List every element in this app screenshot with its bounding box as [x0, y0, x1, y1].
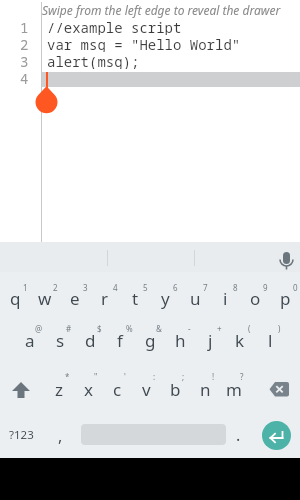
staticText: w: [38, 287, 52, 310]
button[interactable]: v: [132, 377, 160, 401]
button[interactable]: i: [211, 286, 239, 310]
staticText: a: [25, 329, 35, 352]
button[interactable]: p: [271, 286, 299, 310]
button[interactable]: y: [151, 286, 179, 310]
button[interactable]: a: [16, 328, 44, 352]
staticText: 2: [20, 35, 29, 52]
staticText: m: [226, 378, 242, 401]
staticText: c: [113, 378, 122, 401]
staticText: //example script: [47, 18, 182, 35]
staticText: p: [280, 287, 291, 310]
button[interactable]: c: [103, 377, 131, 401]
button[interactable]: h: [166, 328, 194, 352]
staticText: v: [142, 378, 151, 401]
staticText: r: [101, 287, 109, 310]
staticText: j: [208, 329, 213, 352]
staticText: ,: [58, 425, 63, 447]
staticText: 1: [20, 18, 29, 35]
staticText: alert(msg);: [47, 52, 140, 69]
staticText: g: [145, 329, 156, 352]
staticText: !: [212, 371, 215, 382]
staticText: (: [248, 323, 251, 334]
staticText: Swipe from the left edge to reveal the d…: [42, 2, 281, 18]
button[interactable]: t: [121, 286, 149, 310]
button[interactable]: w: [31, 286, 59, 310]
staticText: ?123: [9, 427, 34, 443]
staticText: 3: [20, 52, 29, 69]
staticText: @: [35, 323, 43, 334]
staticText: ;: [182, 371, 185, 382]
staticText: ): [278, 323, 281, 334]
button[interactable]: j: [196, 328, 224, 352]
button[interactable]: b: [161, 377, 189, 401]
staticText: u: [190, 287, 201, 310]
staticText: $: [97, 323, 102, 334]
staticText: var msg = "Hello World": [47, 35, 241, 52]
staticText: ': [124, 371, 126, 382]
staticText: 4: [20, 69, 29, 86]
staticText: %: [126, 323, 133, 334]
button[interactable]: [6, 375, 36, 405]
staticText: n: [200, 378, 211, 401]
staticText: +: [217, 323, 222, 334]
staticText: :: [153, 371, 156, 382]
button[interactable]: r: [91, 286, 119, 310]
staticText: -: [188, 323, 191, 334]
staticText: 3: [83, 282, 88, 293]
button[interactable]: [274, 246, 299, 271]
staticText: 7: [203, 282, 208, 293]
staticText: 9: [263, 282, 268, 293]
button[interactable]: x: [74, 377, 102, 401]
staticText: y: [161, 287, 170, 310]
button[interactable]: [262, 421, 291, 450]
button[interactable]: s: [46, 328, 74, 352]
staticText: ?: [240, 371, 244, 382]
staticText: d: [85, 329, 96, 352]
staticText: 5: [143, 282, 148, 293]
staticText: z: [55, 378, 63, 401]
staticText: 4: [113, 282, 118, 293]
button[interactable]: g: [136, 328, 164, 352]
staticText: *: [65, 371, 70, 382]
button[interactable]: f: [106, 328, 134, 352]
staticText: s: [56, 329, 65, 352]
staticText: b: [170, 378, 181, 401]
button[interactable]: ?123: [4, 424, 38, 446]
button[interactable]: o: [241, 286, 269, 310]
button[interactable]: u: [181, 286, 209, 310]
staticText: q: [10, 287, 21, 310]
staticText: .: [236, 424, 241, 446]
staticText: &: [156, 323, 162, 334]
button[interactable]: n: [191, 377, 219, 401]
staticText: 0: [293, 282, 298, 293]
button[interactable]: ,: [46, 424, 74, 448]
staticText: 6: [173, 282, 178, 293]
staticText: k: [235, 329, 245, 352]
button[interactable]: .: [224, 423, 252, 447]
button[interactable]: m: [220, 377, 248, 401]
staticText: 8: [233, 282, 238, 293]
button[interactable]: e: [61, 286, 89, 310]
staticText: h: [175, 329, 186, 352]
staticText: 2: [53, 282, 58, 293]
button[interactable]: z: [45, 377, 73, 401]
staticText: l: [268, 329, 273, 352]
staticText: 1: [23, 282, 28, 293]
staticText: o: [250, 287, 261, 310]
button[interactable]: d: [76, 328, 104, 352]
staticText: t: [132, 287, 139, 310]
button[interactable]: l: [256, 328, 284, 352]
button[interactable]: k: [226, 328, 254, 352]
staticText: x: [84, 378, 93, 401]
staticText: #: [66, 323, 72, 334]
staticText: i: [223, 287, 228, 310]
button[interactable]: q: [1, 286, 29, 310]
staticText: e: [70, 287, 80, 310]
staticText: ": [94, 371, 98, 382]
button[interactable]: [265, 375, 295, 405]
staticText: f: [117, 329, 123, 352]
